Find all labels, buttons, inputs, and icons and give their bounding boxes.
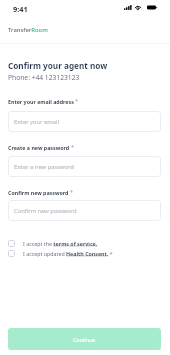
staticText: Enter a new password xyxy=(14,163,74,171)
button[interactable]: Checkbox xyxy=(8,240,98,247)
staticText: Confirm new password xyxy=(14,207,77,215)
staticText: 9:41 xyxy=(13,4,28,14)
staticText: Enter your email address xyxy=(8,98,74,105)
staticText: Enter your email xyxy=(14,118,59,126)
other: Wi-Fi xyxy=(134,5,142,10)
staticText: Create a new password xyxy=(8,144,70,151)
button[interactable]: Enter your email xyxy=(8,111,161,132)
staticText: TransferRoom xyxy=(8,26,48,34)
button[interactable]: Checkbox xyxy=(8,250,113,257)
button[interactable]: Enter a new password xyxy=(8,156,161,177)
other: Battery xyxy=(147,5,157,10)
staticText: * xyxy=(70,144,74,151)
other: Checkbox xyxy=(8,250,15,257)
other: Cellular signal xyxy=(124,5,132,10)
staticText: Continue xyxy=(73,336,96,343)
staticText: I accept updated Health Consent. * xyxy=(23,250,113,257)
staticText: * xyxy=(74,98,78,105)
staticText: * xyxy=(69,189,73,196)
staticText: I accept the terms of service. xyxy=(23,240,98,247)
button[interactable]: Confirm new password xyxy=(8,200,161,221)
staticText: Phone: +44 123123123 xyxy=(8,73,80,82)
staticText: Confirm your agent now xyxy=(8,60,108,71)
other: Checkbox xyxy=(8,240,15,247)
staticText: Confirm new password xyxy=(8,189,69,196)
button[interactable]: Continue xyxy=(8,328,161,350)
button[interactable]: TransferRoom xyxy=(8,26,48,34)
